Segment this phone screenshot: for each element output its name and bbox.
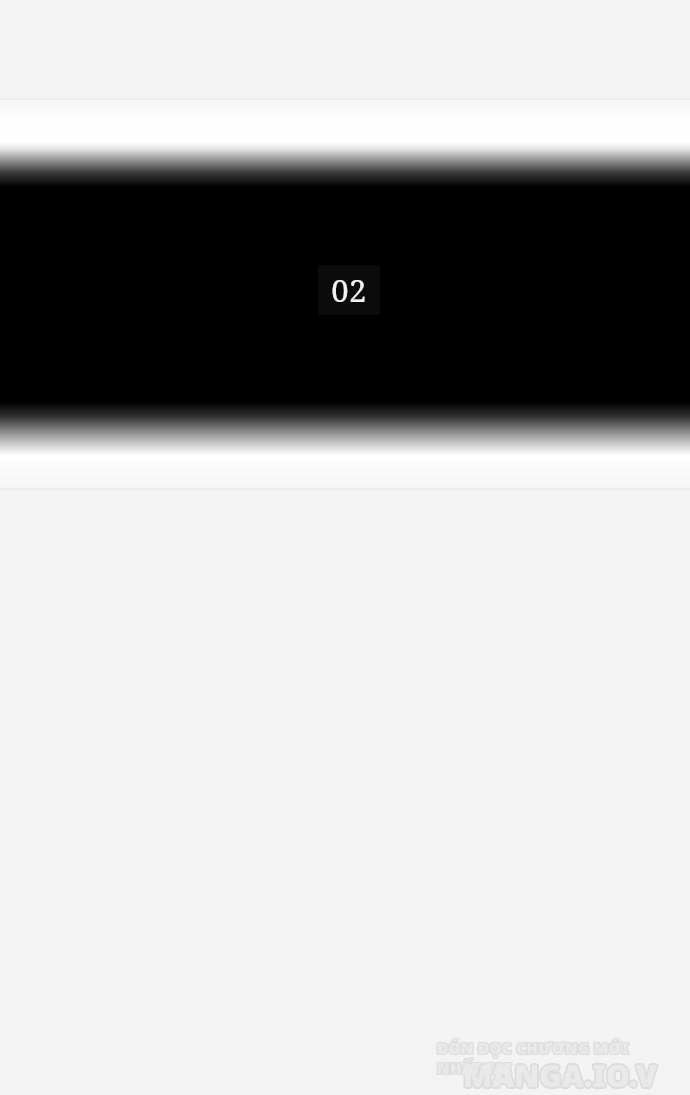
- button[interactable]: 02: [318, 265, 380, 315]
- staticText: 02: [331, 269, 367, 311]
- button[interactable]: manga.io.vn watermark: [480, 1034, 666, 1090]
- button[interactable]: 02: [0, 0, 690, 1095]
